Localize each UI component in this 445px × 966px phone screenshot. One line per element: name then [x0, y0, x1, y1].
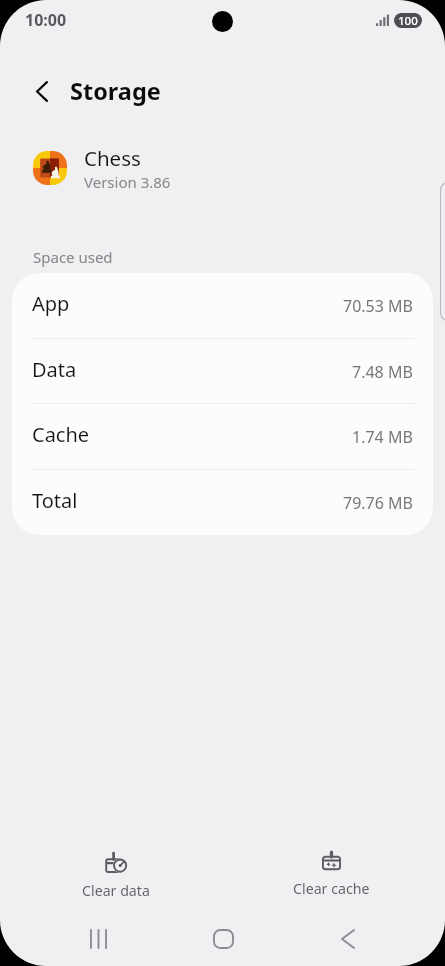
- staticText: App: [32, 290, 70, 317]
- staticText: Cache: [32, 421, 90, 448]
- button[interactable]: Clear data: [36, 842, 196, 908]
- staticText: 7.48 MB: [352, 361, 413, 383]
- button[interactable]: Cache: [12, 404, 433, 470]
- button[interactable]: Back: [321, 912, 375, 966]
- button[interactable]: App: [12, 273, 433, 339]
- staticText: 1.74 MB: [352, 426, 413, 448]
- staticText: Data: [32, 356, 77, 383]
- staticText: Chess: [84, 144, 141, 172]
- button[interactable]: Navigate up: [21, 70, 63, 112]
- staticText: Clear cache: [293, 879, 370, 898]
- staticText: 100: [398, 13, 418, 27]
- staticText: Total: [32, 487, 78, 514]
- button[interactable]: Home: [196, 912, 250, 966]
- staticText: Clear data: [82, 881, 150, 900]
- staticText: 79.76 MB: [343, 492, 413, 514]
- button[interactable]: Data: [12, 339, 433, 404]
- staticText: Storage: [70, 75, 161, 107]
- staticText: 10:00: [25, 9, 67, 31]
- button[interactable]: Total: [12, 470, 433, 535]
- button[interactable]: Clear cache: [251, 842, 411, 906]
- staticText: 70.53 MB: [343, 295, 413, 317]
- button[interactable]: Recents: [71, 912, 125, 966]
- staticText: Version 3.86: [84, 172, 171, 192]
- staticText: Space used: [33, 247, 113, 267]
